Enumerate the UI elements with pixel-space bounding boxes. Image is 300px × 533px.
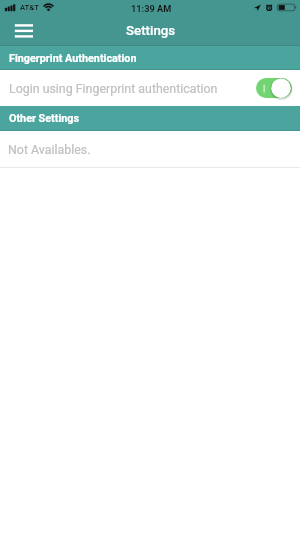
button[interactable]: Open navigation menu (0, 18, 48, 44)
staticText: Other Settings (9, 112, 80, 125)
staticText: AT&T (20, 3, 39, 12)
staticText: 11:39 AM (131, 3, 172, 14)
button[interactable]: Fingerprint login, on (256, 78, 292, 98)
staticText: Not Availables. (8, 142, 91, 157)
staticText: Login using Fingerprint authentication (9, 81, 218, 96)
button[interactable]: Login using Fingerprint authentication (0, 70, 300, 106)
staticText: Fingerprint Authentication (9, 52, 137, 65)
staticText: Settings (126, 23, 176, 39)
